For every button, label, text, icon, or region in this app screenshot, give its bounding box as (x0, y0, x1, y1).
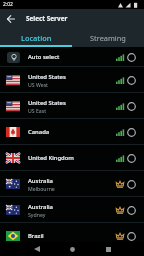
button[interactable] (32, 244, 42, 254)
button[interactable]: United States (0, 93, 144, 119)
button[interactable] (5, 13, 17, 25)
staticText: US West (28, 81, 48, 88)
staticText: Canada (28, 128, 50, 136)
staticText: 2:02 (3, 1, 13, 8)
staticText: Select Server (26, 14, 68, 23)
button[interactable]: Auto select (0, 47, 144, 67)
button[interactable]: Streaming (72, 28, 144, 47)
staticText: Streaming (90, 33, 126, 43)
button[interactable] (67, 244, 77, 254)
button[interactable] (103, 244, 113, 254)
staticText: Auto select (28, 53, 116, 61)
staticText: Sydney (28, 211, 46, 218)
button[interactable]: Australia (0, 197, 144, 223)
button[interactable]: United Kingdom (0, 145, 144, 171)
staticText: United Kingdom (28, 154, 74, 162)
staticText: Australia (28, 177, 53, 185)
staticText: Brazil (28, 232, 44, 240)
button[interactable]: Australia (0, 171, 144, 197)
staticText: United States (28, 99, 66, 107)
staticText: Melbourne (28, 185, 55, 192)
button[interactable]: United States (0, 67, 144, 93)
staticText: United States (28, 73, 66, 81)
staticText: US East (28, 107, 47, 114)
button[interactable]: Canada (0, 119, 144, 145)
staticText: Australia (28, 203, 53, 211)
button[interactable]: Brazil (0, 223, 144, 249)
staticText: Location (21, 33, 52, 43)
button[interactable]: Location (0, 28, 72, 47)
